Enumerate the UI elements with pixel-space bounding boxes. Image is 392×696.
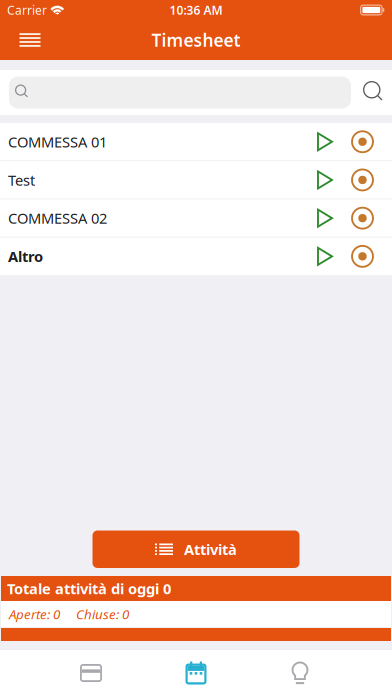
button[interactable]: Altro: [0, 238, 392, 275]
staticText: COMMESSA 02: [8, 208, 107, 228]
staticText: Test: [8, 170, 35, 190]
button[interactable]: Tips: [275, 650, 325, 696]
button[interactable]: Cards: [66, 650, 116, 696]
staticText: 10:36 AM: [169, 2, 222, 18]
staticText: Altro: [8, 247, 43, 266]
staticText: Aperte: 0: [9, 605, 60, 623]
staticText: Totale attività di oggi 0: [7, 579, 171, 598]
button[interactable]: Menu: [8, 20, 52, 60]
staticText: COMMESSA 01: [8, 132, 107, 151]
button[interactable]: Test: [0, 161, 392, 199]
staticText: Timesheet: [151, 28, 240, 51]
button[interactable]: Search: [351, 70, 392, 115]
staticText: Carrier: [7, 2, 47, 18]
button[interactable]: COMMESSA 01: [0, 123, 392, 160]
button[interactable]: COMMESSA 02: [0, 199, 392, 237]
staticText: Chiuse: 0: [76, 605, 129, 623]
button[interactable]: Attività: [92, 530, 299, 568]
staticText: Attività: [184, 539, 237, 559]
button[interactable]: Calendar: [171, 650, 221, 696]
